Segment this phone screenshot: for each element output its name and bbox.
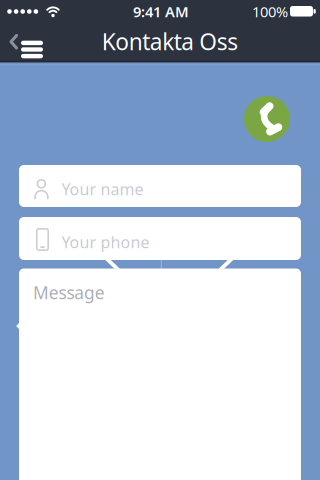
button[interactable]: Back	[8, 33, 20, 50]
staticText: Kontakta Oss	[102, 26, 238, 56]
staticText: 9:41 AM	[133, 2, 189, 21]
staticText: Your name	[61, 178, 143, 200]
staticText: Your phone	[61, 231, 149, 253]
button[interactable]: Call	[244, 96, 290, 142]
staticText: Message	[33, 281, 105, 304]
button[interactable]: Menu	[21, 34, 43, 52]
button[interactable]: Your phone	[19, 217, 301, 260]
button[interactable]: Your name	[19, 165, 301, 207]
staticText: 100%	[252, 2, 288, 21]
button[interactable]: Message	[19, 268, 301, 480]
